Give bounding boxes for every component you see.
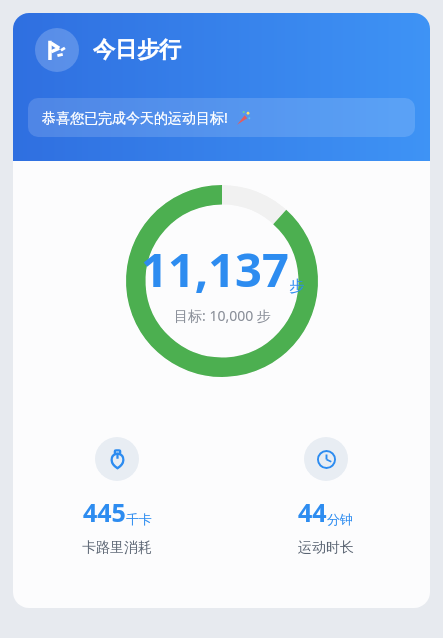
staticText: 恭喜您已完成今天的运动目标!	[42, 108, 228, 127]
staticText: 11,137	[141, 237, 289, 301]
other: Walking	[35, 28, 79, 72]
button[interactable]: 恭喜您已完成今天的运动目标!	[28, 98, 415, 137]
staticText: 运动时长	[298, 539, 354, 557]
other: Duration	[304, 437, 348, 481]
staticText: 今日步行	[93, 36, 181, 64]
other: Calories	[95, 437, 139, 481]
staticText: 卡路里消耗	[82, 539, 152, 557]
staticText: 44	[298, 495, 327, 529]
staticText: 步	[289, 277, 304, 296]
staticText: 目标: 10,000 步	[174, 306, 271, 325]
staticText: 445	[83, 495, 126, 529]
staticText: 千卡	[126, 511, 152, 527]
button[interactable]: Calories	[13, 435, 221, 559]
staticText: 分钟	[327, 511, 353, 527]
button[interactable]: Duration	[221, 435, 430, 559]
button[interactable]: Walking	[35, 28, 181, 72]
